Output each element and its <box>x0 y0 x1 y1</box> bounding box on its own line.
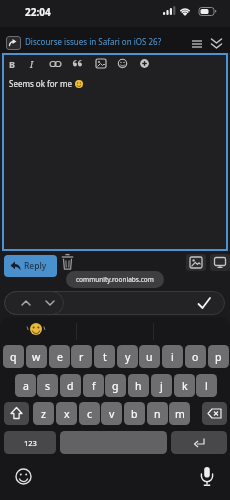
button[interactable]: r <box>71 345 92 368</box>
button[interactable]: v <box>101 402 122 425</box>
staticText: r <box>79 350 84 364</box>
button[interactable]: 123 <box>4 431 56 454</box>
button[interactable]: g <box>105 374 126 397</box>
staticText: 123 <box>24 438 37 448</box>
button[interactable]: c <box>79 402 100 425</box>
button[interactable]: l <box>196 374 217 397</box>
staticText: Seems ok for me <box>9 78 75 89</box>
button[interactable] <box>190 38 204 50</box>
button[interactable] <box>199 466 215 488</box>
button[interactable] <box>60 431 167 454</box>
staticText: t <box>103 350 107 364</box>
staticText: a <box>23 379 29 393</box>
button[interactable]: p <box>208 345 229 368</box>
button[interactable] <box>210 254 230 271</box>
button[interactable]: y <box>117 345 138 368</box>
staticText: Discourse issues in Safari on iOS 26? <box>25 36 162 47</box>
staticText: h <box>135 379 142 393</box>
staticText: n <box>154 407 161 421</box>
button[interactable]: j <box>151 374 172 397</box>
staticText: Reply <box>24 260 47 272</box>
staticText: u <box>146 350 153 364</box>
button[interactable] <box>61 253 74 271</box>
staticText: p <box>215 350 222 364</box>
staticText: v <box>109 407 115 421</box>
staticText: j <box>160 379 163 393</box>
button[interactable]: f <box>83 374 104 397</box>
staticText: 22:04 <box>25 5 51 19</box>
staticText: s <box>45 379 51 393</box>
staticText: i <box>171 350 174 364</box>
button[interactable] <box>209 36 224 51</box>
staticText: I <box>30 58 34 70</box>
button[interactable] <box>15 468 32 485</box>
staticText: c <box>87 407 93 421</box>
button[interactable]: q <box>3 345 24 368</box>
button[interactable]: w <box>26 345 47 368</box>
button[interactable]: I <box>30 58 34 70</box>
staticText: o <box>192 350 199 364</box>
button[interactable]: i <box>162 345 183 368</box>
staticText: m <box>175 407 185 421</box>
staticText: b <box>131 407 138 421</box>
staticText: d <box>67 379 74 393</box>
button[interactable] <box>186 254 206 271</box>
staticText: q <box>10 350 17 364</box>
button[interactable]: t <box>94 345 115 368</box>
button[interactable]: d <box>60 374 81 397</box>
button[interactable] <box>4 402 29 425</box>
button[interactable]: z <box>33 402 54 425</box>
button[interactable]: h <box>128 374 149 397</box>
button[interactable]: s <box>37 374 58 397</box>
staticText: f <box>92 379 96 393</box>
button[interactable]: b <box>124 402 145 425</box>
button[interactable]: e <box>49 345 70 368</box>
staticText: g <box>112 379 119 393</box>
staticText: B <box>9 58 15 70</box>
button[interactable] <box>4 291 64 315</box>
button[interactable] <box>6 36 21 50</box>
button[interactable] <box>202 402 227 425</box>
staticText: y <box>125 350 131 364</box>
button[interactable]: Discourse issues in Safari on iOS 26? <box>25 36 162 47</box>
staticText: k <box>182 379 188 393</box>
staticText: w <box>32 350 41 364</box>
staticText: z <box>41 407 46 421</box>
button[interactable]: m <box>169 402 190 425</box>
button[interactable] <box>171 431 227 454</box>
button[interactable]: n <box>147 402 168 425</box>
staticText: x <box>64 407 70 421</box>
button[interactable]: u <box>139 345 160 368</box>
button[interactable]: B <box>9 58 15 70</box>
button[interactable]: x <box>56 402 77 425</box>
button[interactable]: k <box>174 374 195 397</box>
button[interactable]: o <box>185 345 206 368</box>
staticText: e <box>57 350 63 364</box>
button[interactable] <box>196 295 213 311</box>
staticText: community.roonlabs.com <box>76 275 154 284</box>
staticText: l <box>205 379 208 393</box>
button[interactable]: a <box>15 374 36 397</box>
button[interactable]: Reply <box>4 255 57 277</box>
